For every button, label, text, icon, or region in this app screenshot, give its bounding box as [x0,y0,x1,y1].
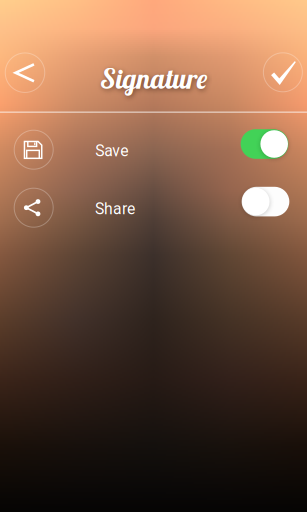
button[interactable]: Done [263,53,302,92]
button[interactable]: Back [5,53,45,92]
button[interactable]: Share [14,188,53,227]
staticText: Share [95,199,135,218]
button[interactable]: Save [14,130,53,169]
staticText: Signature [100,61,207,96]
staticText: Save [95,142,128,160]
